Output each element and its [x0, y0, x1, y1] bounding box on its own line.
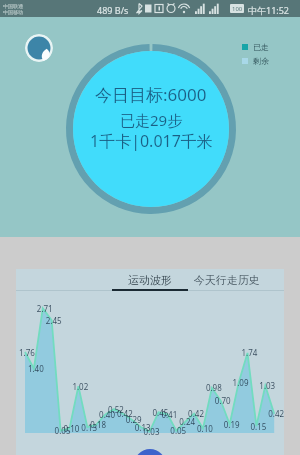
staticText: 今日目标:6000 — [95, 83, 207, 106]
button[interactable]: Step progress — [65, 43, 237, 215]
staticText: 中国移动 — [3, 9, 23, 15]
button[interactable]: 今天行走历史 — [188, 269, 284, 290]
button[interactable]: App logo — [25, 34, 53, 62]
staticText: 中午11:52 — [248, 4, 290, 16]
button[interactable]: 运动波形 — [112, 269, 188, 290]
staticText: 中国联通 — [3, 3, 23, 9]
staticText: 今天行走历史 — [188, 272, 260, 287]
staticText: 100 — [232, 5, 243, 13]
staticText: 已走 — [253, 42, 269, 52]
staticText: 1千卡|0.017千米 — [90, 130, 213, 152]
staticText: 已走29步 — [120, 110, 183, 130]
staticText: 运动波形 — [128, 273, 172, 287]
staticText: 489 B/s — [97, 4, 129, 16]
staticText: 剩余 — [253, 56, 269, 66]
button[interactable]: Add — [134, 449, 166, 455]
